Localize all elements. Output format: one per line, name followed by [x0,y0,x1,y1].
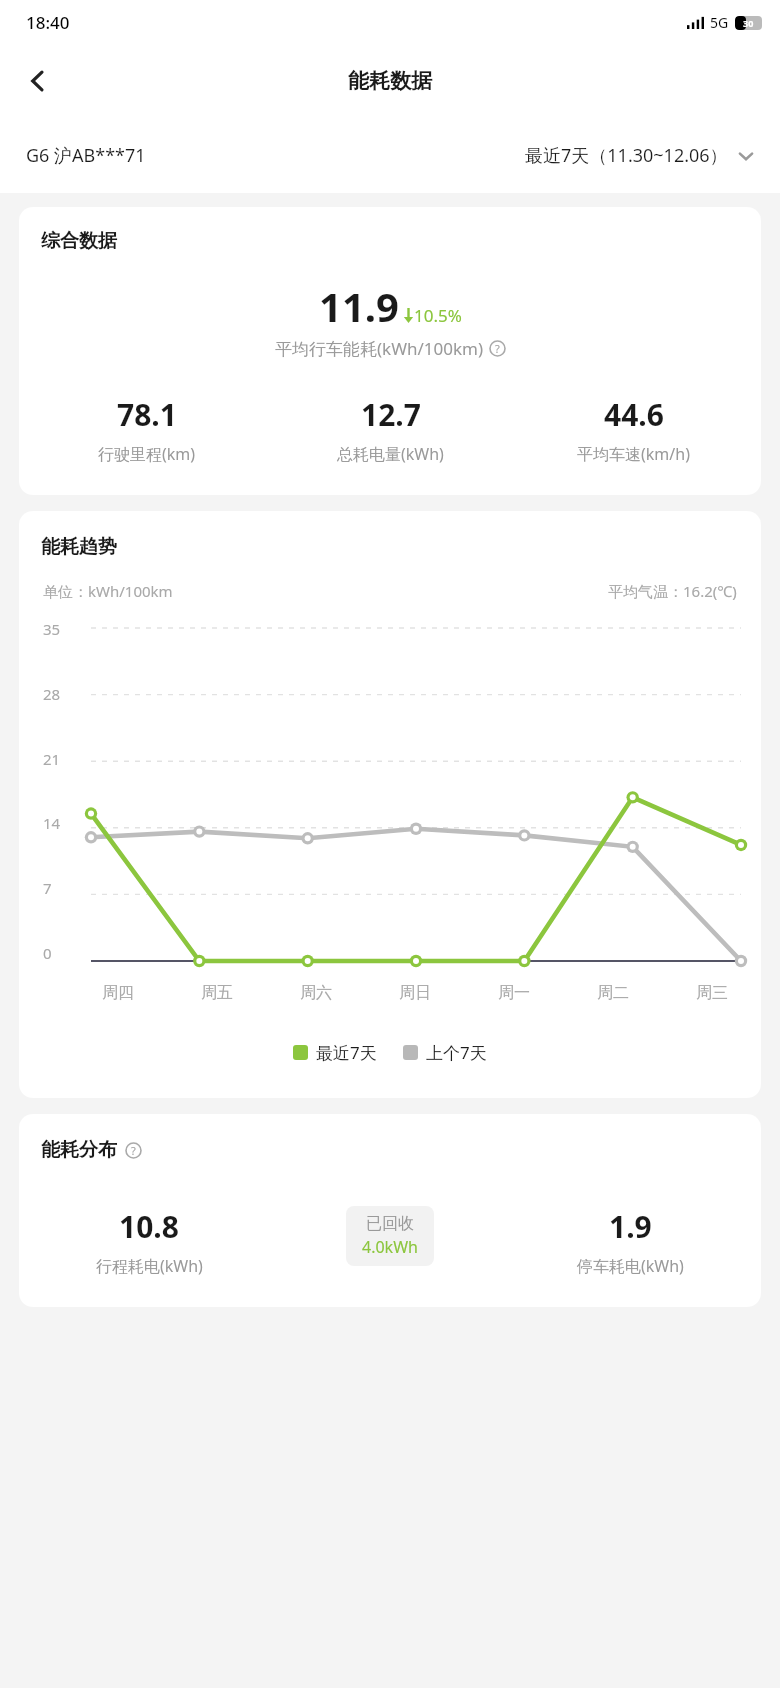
staticText: 周一 [498,983,530,1003]
button[interactable]: 1.9 [510,1206,751,1277]
staticText: 10.8 [119,1206,179,1247]
staticText: 停车耗电(kWh) [577,1255,684,1277]
button[interactable]: 10.8 [29,1206,269,1277]
staticText: 14 [43,813,61,831]
staticText: 平均气温：16.2(℃) [608,581,737,601]
staticText: 4.0kWh [362,1236,418,1258]
staticText: 上个7天 [426,1041,487,1064]
button[interactable]: Back [12,55,64,107]
staticText: 单位：kWh/100km [43,581,173,601]
staticText: 平均车速(km/h) [577,443,690,465]
staticText: 最近7天 [316,1041,377,1064]
staticText: 平均行车能耗(kWh/100km) [275,337,484,360]
staticText: 11.9 [319,279,399,333]
staticText: 0 [43,943,52,961]
staticText: 周三 [696,983,728,1003]
button[interactable]: 44.6 [512,394,755,465]
staticText: 12.7 [361,394,421,435]
button[interactable]: 最近7天（11.30~12.06） [525,143,754,168]
button[interactable]: 12.7 [269,394,512,465]
staticText: 周四 [102,983,134,1003]
staticText: 总耗电量(kWh) [337,443,444,465]
staticText: 28 [43,684,61,702]
staticText: 周日 [399,983,431,1003]
staticText: ? [131,1143,136,1158]
staticText: 行驶里程(km) [98,443,196,465]
staticText: 5G [710,13,729,32]
button[interactable]: 最近7天 [293,1041,377,1064]
staticText: G6 沪AB***71 [26,143,146,168]
button[interactable]: 78.1 [25,394,269,465]
staticText: 1.9 [609,1206,652,1247]
staticText: 能耗趋势 [41,535,117,559]
staticText: 综合数据 [41,229,117,253]
staticText: 周六 [300,983,332,1003]
staticText: 最近7天（11.30~12.06） [525,143,728,168]
staticText: 周五 [201,983,233,1003]
staticText: 44.6 [604,394,664,435]
staticText: 78.1 [117,394,177,435]
staticText: 已回收 [366,1214,414,1234]
staticText: 10.5% [414,304,462,327]
staticText: 能耗数据 [348,68,432,94]
staticText: 周二 [597,983,629,1003]
staticText: 7 [43,878,52,896]
staticText: 能耗分布 [41,1138,117,1162]
staticText: ? [495,341,500,356]
staticText: 30 [743,17,754,29]
staticText: 行程耗电(kWh) [96,1255,203,1277]
button[interactable]: 上个7天 [403,1041,487,1064]
staticText: 35 [43,619,61,637]
staticText: 18:40 [26,11,70,34]
staticText: 21 [43,749,61,767]
